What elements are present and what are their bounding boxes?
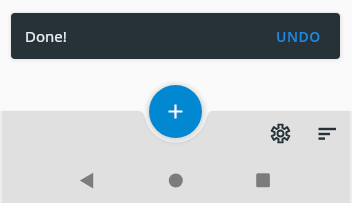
button[interactable]: UNDO [267, 21, 330, 52]
button[interactable]: Settings [270, 123, 291, 144]
button[interactable]: Add [149, 85, 202, 138]
staticText: UNDO [276, 27, 321, 46]
staticText: Done! [25, 26, 67, 46]
button[interactable]: Sort [314, 122, 338, 146]
